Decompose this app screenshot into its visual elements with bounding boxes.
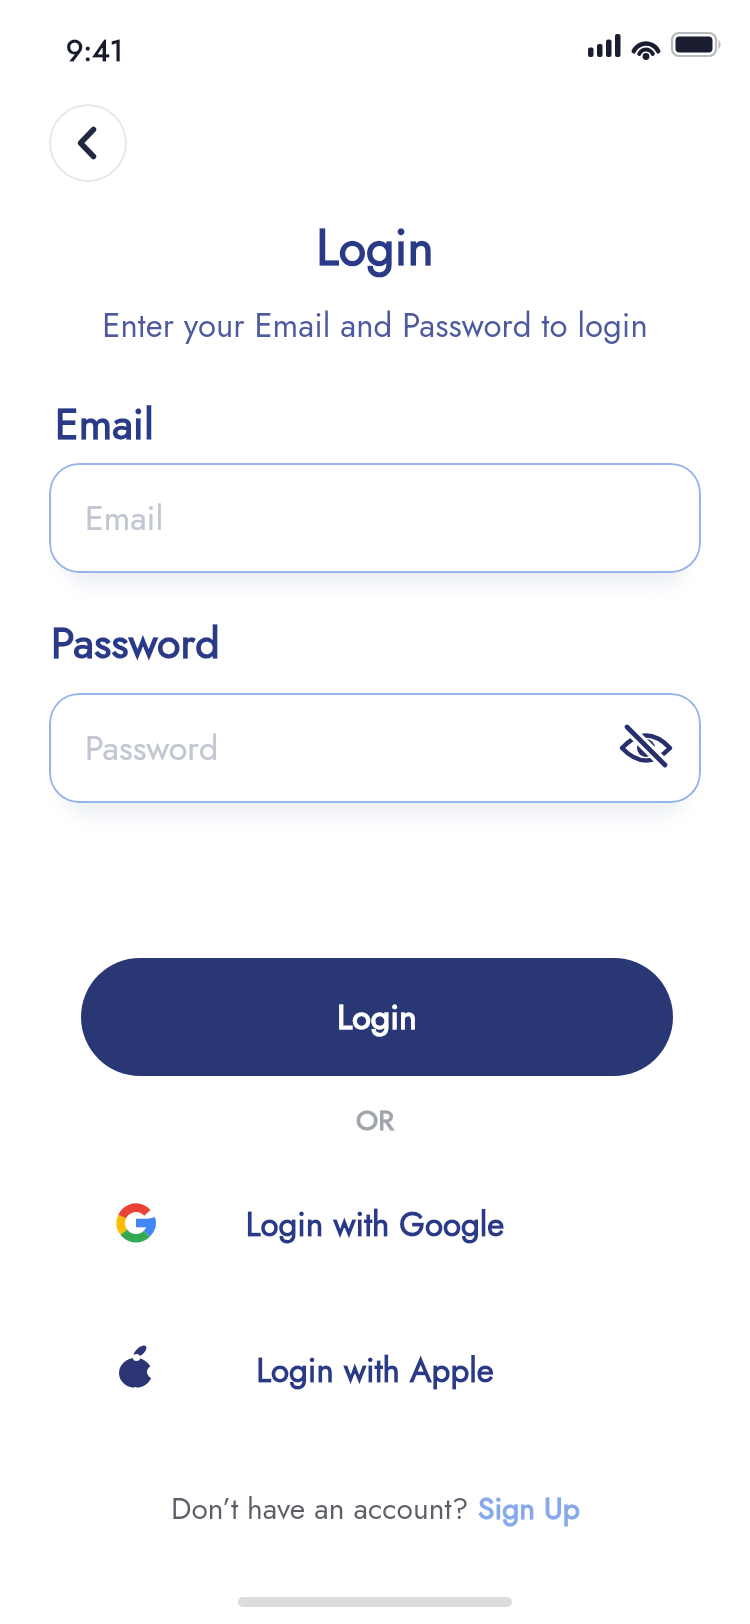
staticText: Login bbox=[0, 211, 750, 283]
staticText: Login with Google bbox=[0, 1201, 750, 1249]
staticText: Enter your Email and Password to login bbox=[0, 302, 750, 350]
staticText: Login bbox=[337, 993, 417, 1042]
staticText: OR bbox=[0, 1100, 750, 1140]
button[interactable]: Sign Up bbox=[478, 1487, 580, 1530]
button[interactable]: Login with Google bbox=[0, 1188, 750, 1258]
staticText: Password bbox=[51, 612, 220, 674]
button[interactable] bbox=[49, 104, 127, 182]
staticText: Email bbox=[55, 393, 154, 455]
staticText: 9:41 bbox=[66, 29, 124, 72]
button[interactable]: Password bbox=[49, 693, 701, 803]
staticText: Email bbox=[85, 494, 164, 543]
staticText: Password bbox=[85, 724, 219, 773]
button[interactable]: Login with Apple bbox=[0, 1333, 750, 1403]
button[interactable]: Login bbox=[81, 958, 673, 1076]
button[interactable]: Email bbox=[49, 463, 701, 573]
staticText: Don’t have an account? bbox=[171, 1487, 478, 1530]
staticText: Login with Apple bbox=[0, 1347, 750, 1395]
